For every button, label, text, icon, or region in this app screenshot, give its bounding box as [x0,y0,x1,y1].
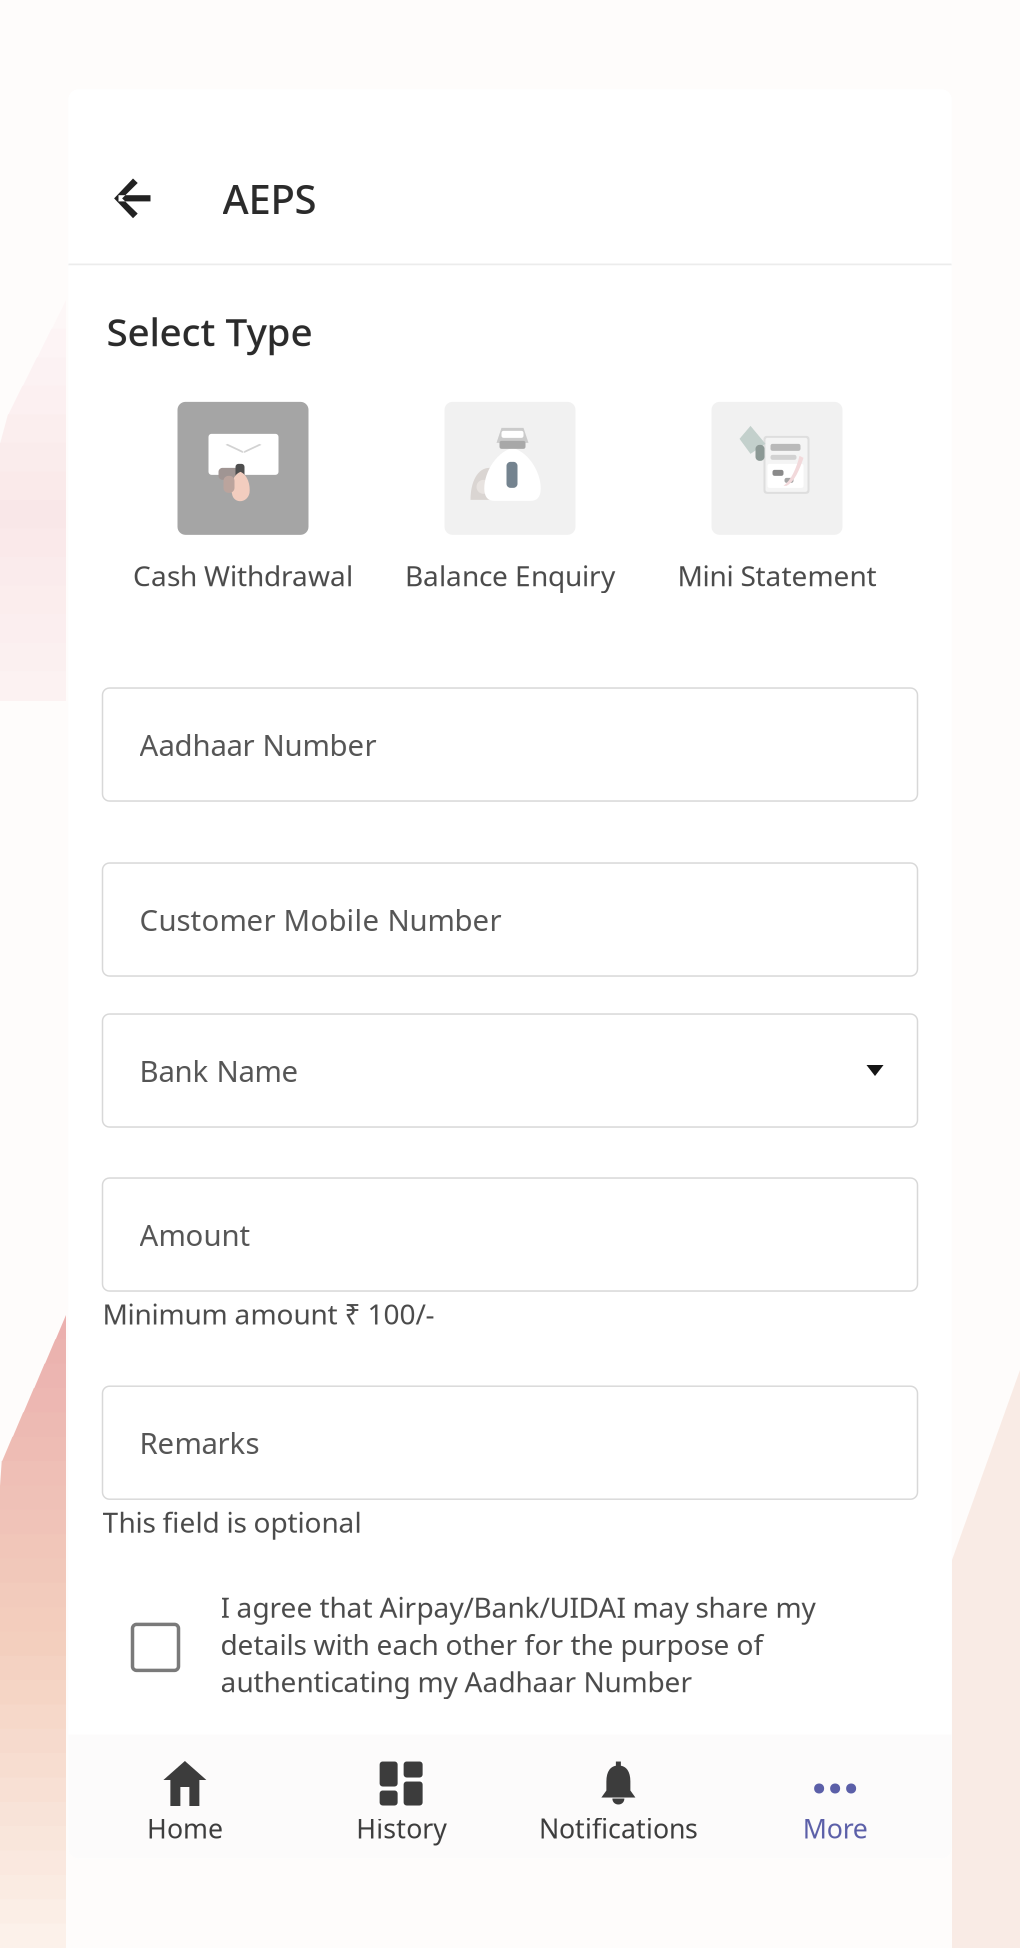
button[interactable]: Aadhaar Number [102,688,917,801]
staticText: I agree that Airpay/Bank/UIDAI may share… [220,1588,815,1700]
staticText: Minimum amount ₹ 100/- [102,1295,434,1332]
staticText: Home [147,1810,223,1846]
button[interactable]: Bank Name [102,1014,917,1127]
button[interactable]: Cash Withdrawal [109,402,376,594]
staticText: Customer Mobile Number [139,900,501,939]
staticText: Balance Enquiry [405,557,615,594]
staticText: Amount [139,1215,250,1254]
staticText: More [803,1810,868,1846]
staticText: Select Type [106,305,312,357]
button[interactable]: Remarks [102,1386,917,1499]
staticText: History [356,1810,447,1846]
staticText: Remarks [139,1423,259,1462]
staticText: Mini Statement [677,557,876,594]
staticText: This field is optional [102,1503,361,1540]
button[interactable]: Amount [102,1178,917,1291]
button[interactable]: Customer Mobile Number [102,863,917,976]
staticText: AEPS [222,172,316,225]
button[interactable]: More [727,1734,944,1858]
button[interactable]: History [293,1734,510,1858]
button[interactable]: Back [90,167,174,229]
button[interactable]: Mini Statement [643,402,910,594]
button[interactable]: Notifications [510,1734,727,1858]
staticText: Notifications [539,1810,698,1846]
button[interactable]: Balance Enquiry [376,402,643,594]
staticText: Aadhaar Number [139,725,376,764]
staticText: Cash Withdrawal [133,557,353,594]
button[interactable]: I agree that Airpay/Bank/UIDAI may share… [68,1588,897,1700]
button[interactable]: Home [76,1734,293,1858]
staticText: Bank Name [139,1051,298,1090]
